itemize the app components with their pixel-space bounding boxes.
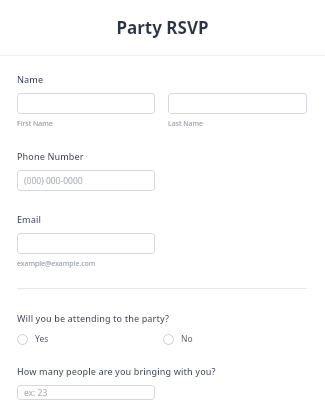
staticText: First Name <box>17 119 53 129</box>
staticText: Will you be attending to the party? <box>17 312 170 324</box>
staticText: Phone Number <box>17 150 84 162</box>
button[interactable] <box>168 93 307 114</box>
staticText: No <box>181 333 193 345</box>
button[interactable]: No <box>163 333 193 345</box>
staticText: How many people are you bringing with yo… <box>17 365 216 377</box>
staticText: ex: 23 <box>24 387 48 399</box>
staticText: Yes <box>35 333 49 345</box>
button[interactable]: ex: 23 <box>17 385 155 400</box>
staticText: Name <box>17 73 44 85</box>
button[interactable]: (000) 000-0000 <box>17 170 155 191</box>
staticText: example@example.com <box>17 259 96 269</box>
button[interactable]: Yes <box>17 333 163 345</box>
staticText: (000) 000-0000 <box>24 175 83 187</box>
button[interactable] <box>17 233 155 254</box>
staticText: Last Name <box>168 119 204 129</box>
button[interactable] <box>17 93 155 114</box>
staticText: Email <box>17 213 42 225</box>
staticText: Party RSVP <box>0 16 325 39</box>
